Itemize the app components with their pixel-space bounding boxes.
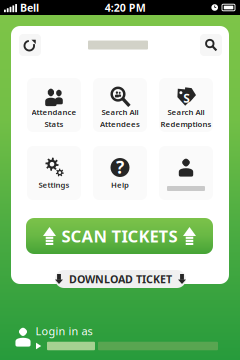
button[interactable]: Settings bbox=[27, 146, 81, 200]
button[interactable]: Attendance bbox=[27, 78, 81, 132]
staticText: Stats bbox=[44, 119, 63, 129]
staticText: SCAN TICKETS bbox=[61, 225, 177, 247]
staticText: Redemptions bbox=[160, 119, 211, 129]
button[interactable]: ? bbox=[93, 146, 147, 200]
button[interactable]: Search bbox=[200, 34, 222, 56]
staticText: Login in as bbox=[35, 324, 92, 338]
staticText: Bell bbox=[20, 0, 39, 15]
staticText: Search All bbox=[101, 107, 138, 117]
staticText: Search All bbox=[167, 107, 204, 117]
staticText: Attendees bbox=[100, 119, 140, 129]
staticText: Help bbox=[111, 179, 129, 190]
button[interactable]: DOWNLOAD TICKET bbox=[55, 270, 186, 288]
button[interactable]: Search All bbox=[93, 78, 147, 132]
staticText: 4:20 PM bbox=[105, 0, 146, 15]
staticText: S bbox=[183, 90, 190, 106]
button[interactable] bbox=[159, 146, 213, 200]
button[interactable]: S bbox=[159, 78, 213, 132]
staticText: Attendance bbox=[31, 107, 76, 117]
button[interactable]: Refresh bbox=[19, 34, 41, 56]
button[interactable]: SCAN TICKETS bbox=[26, 218, 213, 254]
staticText: DOWNLOAD TICKET bbox=[69, 272, 172, 286]
staticText: ? bbox=[116, 156, 124, 179]
staticText: Settings bbox=[38, 179, 69, 190]
